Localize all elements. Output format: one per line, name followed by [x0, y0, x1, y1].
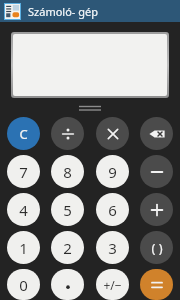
button[interactable]: Minus	[140, 155, 173, 188]
button[interactable]: 5	[51, 193, 84, 226]
button[interactable]: Backspace	[140, 117, 173, 150]
button[interactable]: Divide	[51, 117, 84, 150]
button[interactable]: 2	[51, 231, 84, 264]
button[interactable]: 6	[96, 193, 129, 226]
staticText: 2	[63, 238, 72, 258]
staticText: +/−	[103, 277, 122, 293]
button[interactable]: 4	[7, 193, 40, 226]
staticText: C	[19, 125, 28, 143]
button[interactable]: Plus	[140, 193, 173, 226]
staticText: 0	[19, 275, 28, 295]
staticText: 9	[108, 162, 117, 182]
staticText: Számoló- gép	[28, 4, 98, 19]
button[interactable]: Multiply	[96, 117, 129, 150]
staticText: 3	[108, 238, 117, 258]
button[interactable]: 3	[96, 231, 129, 264]
button[interactable]: 9	[96, 155, 129, 188]
staticText: 8	[63, 162, 72, 182]
button[interactable]: Clear	[7, 117, 40, 150]
staticText: 1	[19, 238, 28, 258]
button[interactable]: Decimal point	[51, 269, 84, 300]
staticText: 6	[108, 200, 117, 220]
staticText: ( )	[151, 239, 163, 257]
button[interactable]: 8	[51, 155, 84, 188]
button[interactable]: Plus minus	[96, 269, 129, 300]
button[interactable]: 0	[7, 269, 40, 300]
staticText: 4	[19, 200, 28, 220]
button[interactable]: 7	[7, 155, 40, 188]
staticText: 5	[63, 200, 72, 220]
staticText: 7	[19, 162, 28, 182]
button[interactable]: Equals	[140, 269, 173, 300]
button[interactable]: Parentheses	[140, 231, 173, 264]
button[interactable]: 1	[7, 231, 40, 264]
